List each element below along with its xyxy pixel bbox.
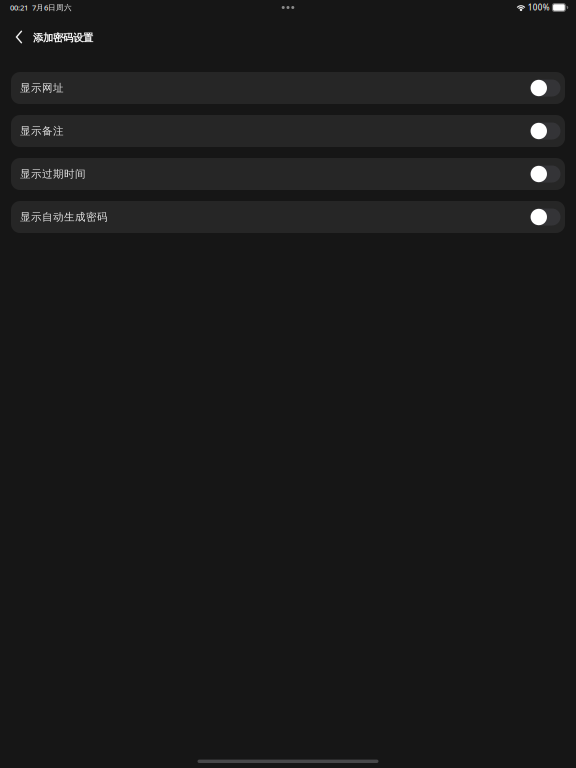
staticText: 显示备注 <box>20 124 64 138</box>
staticText: 100% <box>528 2 550 13</box>
staticText: 添加密码设置 <box>33 31 93 44</box>
staticText: 显示自动生成密码 <box>20 210 108 224</box>
staticText: 显示网址 <box>20 81 64 95</box>
staticText: 00:21 7月6日周六 <box>10 2 72 13</box>
button[interactable]: 显示过期时间 <box>11 158 565 190</box>
button[interactable]: 显示网址 <box>11 72 565 104</box>
staticText: 显示过期时间 <box>20 167 86 181</box>
button[interactable]: 显示备注 <box>11 115 565 147</box>
button[interactable]: 返回 <box>7 22 31 52</box>
button[interactable]: 显示自动生成密码 <box>11 201 565 233</box>
